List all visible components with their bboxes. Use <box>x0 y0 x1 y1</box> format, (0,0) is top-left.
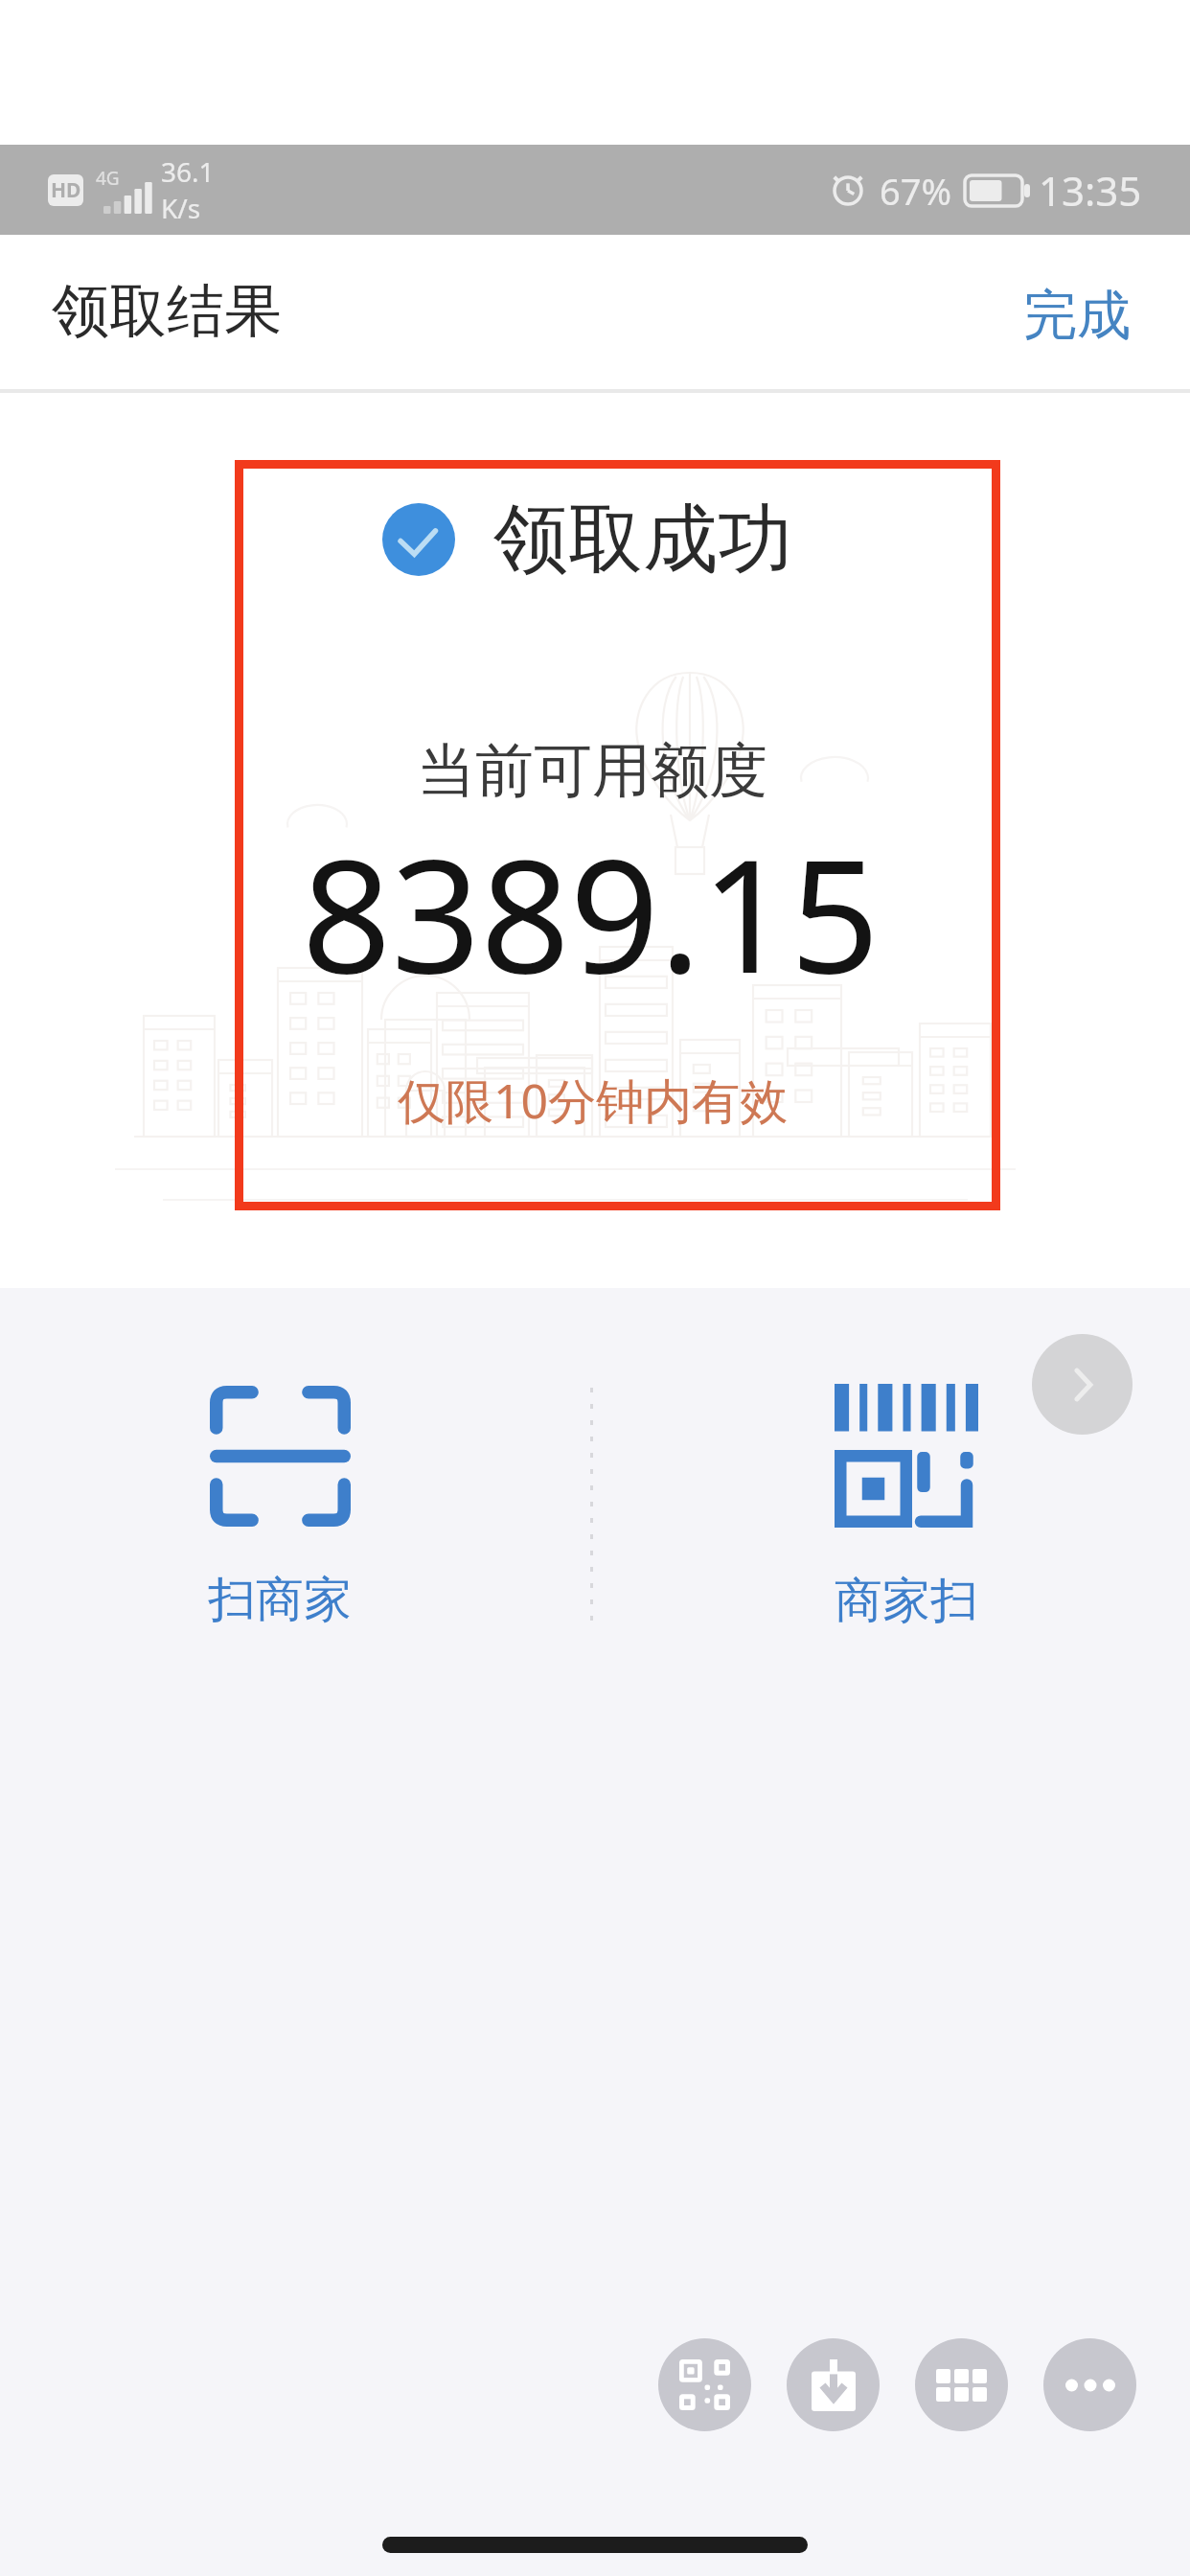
staticText: 当前可用额度 <box>417 734 767 808</box>
staticText: 完成 <box>1023 282 1131 350</box>
staticText: 13:35 <box>1039 163 1142 218</box>
staticText: K/s <box>161 190 201 226</box>
button[interactable]: 扫商家 <box>0 1324 590 1689</box>
button[interactable]: QR code <box>658 2338 751 2431</box>
button[interactable]: 完成 <box>966 252 1190 377</box>
staticText: 8389.15 <box>302 806 881 1019</box>
staticText: 商家扫 <box>835 1571 978 1631</box>
staticText: 领取结果 <box>52 275 282 348</box>
button[interactable]: More options <box>1043 2338 1136 2431</box>
staticText: HD <box>51 176 81 204</box>
button[interactable]: Apps <box>915 2338 1008 2431</box>
button[interactable]: Download <box>787 2338 880 2431</box>
staticText: 36.1 <box>161 153 215 190</box>
staticText: 仅限10分钟内有效 <box>398 1068 789 1133</box>
staticText: 扫商家 <box>208 1570 352 1630</box>
staticText: 4G <box>96 166 120 191</box>
staticText: 领取成功 <box>493 493 792 586</box>
staticText: 67% <box>880 166 952 216</box>
button[interactable]: Next <box>1032 1334 1133 1435</box>
button[interactable]: 商家扫 <box>594 1324 1190 1689</box>
